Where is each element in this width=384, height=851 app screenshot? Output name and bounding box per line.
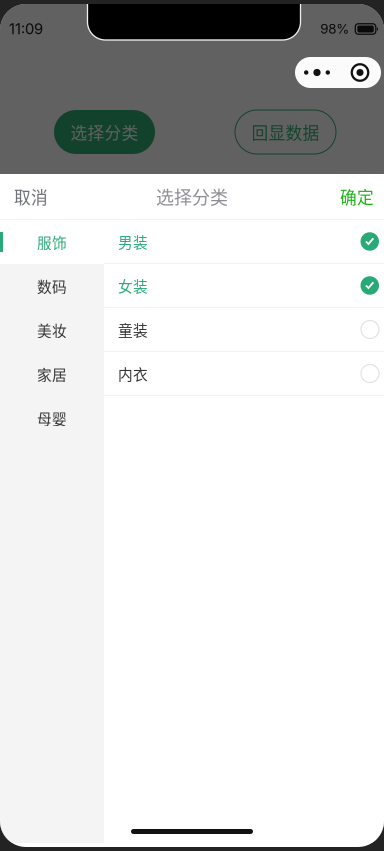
button[interactable]: 男装 <box>104 220 384 264</box>
staticText: 美妆 <box>37 319 67 341</box>
button[interactable]: 选择分类 <box>54 110 155 154</box>
staticText: 女装 <box>118 275 148 296</box>
staticText: 取消 <box>14 184 48 208</box>
button[interactable]: 童装 <box>104 308 384 352</box>
staticText: 回显数据 <box>251 120 319 144</box>
button[interactable]: More <box>295 57 381 88</box>
button[interactable]: 女装 <box>104 264 384 308</box>
button[interactable]: 家居 <box>0 352 104 396</box>
staticText: 内衣 <box>118 363 148 384</box>
button[interactable]: 回显数据 <box>235 110 336 154</box>
staticText: 确定 <box>340 184 374 208</box>
button[interactable]: 内衣 <box>104 352 384 396</box>
staticText: 选择分类 <box>156 183 228 210</box>
staticText: 服饰 <box>37 231 67 253</box>
staticText: 选择分类 <box>70 120 138 144</box>
staticText: 男装 <box>118 231 148 252</box>
staticText: 98% <box>320 21 349 37</box>
staticText: 数码 <box>37 275 67 297</box>
button[interactable]: 数码 <box>0 264 104 308</box>
staticText: 童装 <box>118 319 148 340</box>
button[interactable]: 取消 <box>0 174 62 219</box>
button[interactable]: 美妆 <box>0 308 104 352</box>
button[interactable]: 母婴 <box>0 396 104 440</box>
button[interactable]: 服饰 <box>0 220 104 264</box>
staticText: 家居 <box>37 363 67 385</box>
staticText: 11:09 <box>9 20 43 38</box>
staticText: 母婴 <box>37 407 67 429</box>
button[interactable]: 确定 <box>326 174 384 219</box>
